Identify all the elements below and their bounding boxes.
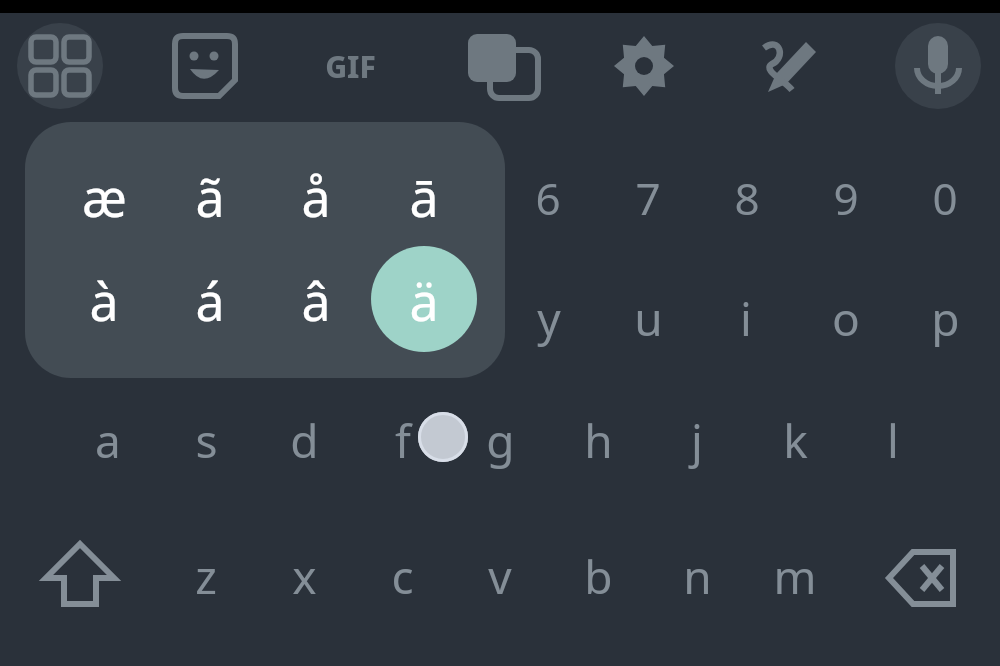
button[interactable]: Voice input (888, 16, 988, 116)
button[interactable]: Stickers (155, 16, 255, 116)
button[interactable]: à (54, 250, 154, 350)
button[interactable]: z (160, 528, 252, 624)
staticText: GIF (325, 46, 376, 87)
staticText: ã (195, 161, 225, 232)
staticText: u (634, 287, 663, 350)
button[interactable]: d (258, 392, 350, 488)
button[interactable]: æ (54, 146, 154, 246)
button[interactable]: a (62, 392, 154, 488)
staticText: i (740, 287, 752, 350)
button[interactable]: p (899, 270, 991, 366)
button[interactable]: y (503, 270, 595, 366)
button[interactable]: Handwriting (740, 16, 840, 116)
button[interactable]: Settings (594, 16, 694, 116)
staticText: m (773, 545, 817, 608)
button[interactable]: GIF (305, 31, 395, 101)
button[interactable]: 8 (701, 150, 793, 246)
button[interactable]: v (454, 528, 546, 624)
button[interactable]: Shift (30, 526, 130, 626)
button[interactable]: 0 (899, 150, 991, 246)
button[interactable]: u (602, 270, 694, 366)
staticText: d (290, 409, 319, 472)
button[interactable]: Apps (10, 16, 110, 116)
staticText: k (783, 409, 808, 472)
button[interactable]: j (651, 392, 743, 488)
button[interactable]: s (160, 392, 252, 488)
staticText: ä (409, 265, 439, 336)
staticText: á (195, 265, 225, 336)
button[interactable]: m (749, 528, 841, 624)
button[interactable]: ä (374, 250, 474, 350)
button[interactable]: i (700, 270, 792, 366)
staticText: v (488, 545, 512, 608)
button[interactable]: h (552, 392, 644, 488)
staticText: a (95, 409, 121, 472)
button[interactable]: l (847, 392, 939, 488)
staticText: à (89, 265, 119, 336)
staticText: p (931, 287, 960, 350)
staticText: å (301, 161, 331, 232)
button[interactable]: c (356, 528, 448, 624)
button[interactable]: g (454, 392, 546, 488)
button[interactable]: Backspace (875, 528, 975, 628)
staticText: 6 (535, 168, 561, 228)
staticText: 8 (734, 168, 760, 228)
staticText: h (584, 409, 613, 472)
staticText: b (584, 545, 613, 608)
button[interactable]: Translate (448, 16, 548, 116)
staticText: x (292, 545, 317, 608)
button[interactable]: â (266, 250, 366, 350)
staticText: o (832, 287, 860, 350)
staticText: f (395, 409, 411, 472)
button[interactable]: ã (160, 146, 260, 246)
button[interactable]: å (266, 146, 366, 246)
staticText: c (391, 545, 414, 608)
staticText: y (537, 287, 561, 350)
button[interactable]: 7 (602, 150, 694, 246)
button[interactable]: f (357, 392, 449, 488)
staticText: â (301, 265, 331, 336)
staticText: g (486, 409, 515, 472)
staticText: ā (409, 161, 439, 232)
button[interactable]: b (552, 528, 644, 624)
button[interactable]: 6 (502, 150, 594, 246)
staticText: 7 (635, 168, 661, 228)
button[interactable]: 9 (800, 150, 892, 246)
button[interactable]: x (258, 528, 350, 624)
staticText: s (195, 409, 218, 472)
button[interactable]: a umlaut (371, 246, 477, 352)
button[interactable]: o (800, 270, 892, 366)
staticText: æ (82, 161, 127, 232)
button[interactable]: ā (374, 146, 474, 246)
staticText: 0 (932, 168, 958, 228)
staticText: z (195, 545, 217, 608)
button[interactable]: k (749, 392, 841, 488)
staticText: n (683, 545, 712, 608)
staticText: j (691, 409, 703, 472)
staticText: 9 (833, 168, 859, 228)
button[interactable]: á (160, 250, 260, 350)
button[interactable]: n (651, 528, 743, 624)
staticText: l (887, 409, 899, 472)
